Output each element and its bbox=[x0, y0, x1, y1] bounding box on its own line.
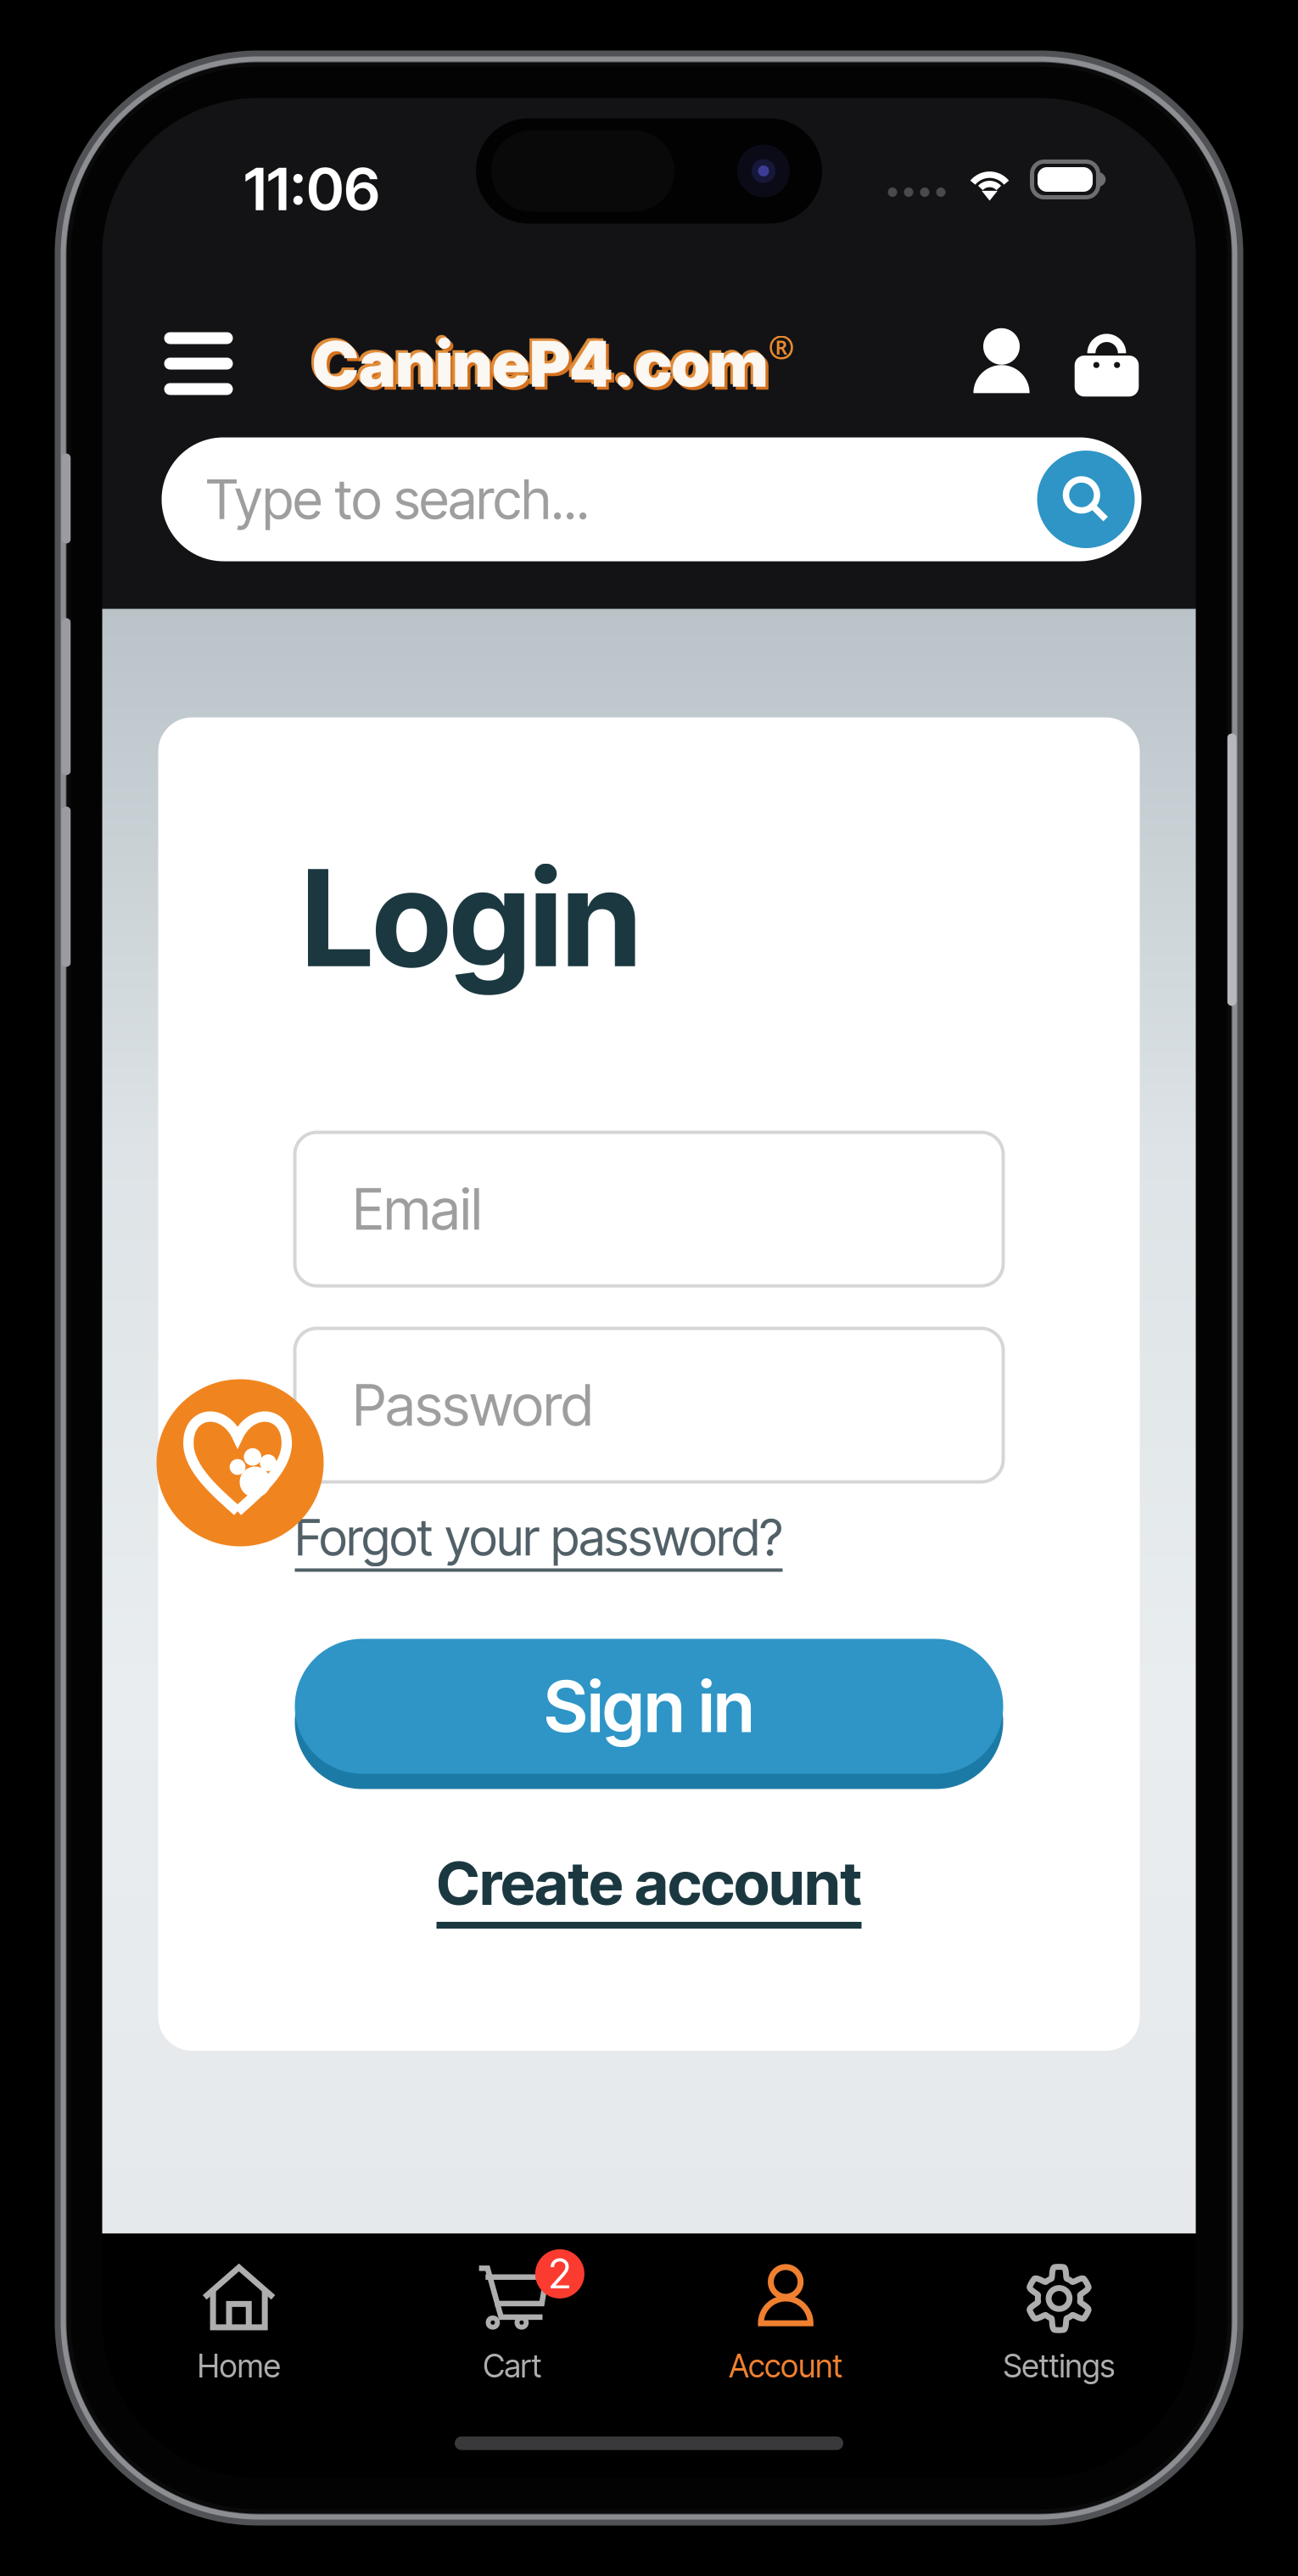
staticText: Home bbox=[197, 2347, 280, 2385]
staticText: Cart bbox=[483, 2347, 542, 2385]
staticText: Email bbox=[352, 1175, 482, 1243]
button[interactable]: Account bbox=[649, 2234, 922, 2385]
button[interactable]: Forgot your password? bbox=[295, 1507, 783, 1572]
staticText: CanineP4.com bbox=[309, 323, 766, 399]
button[interactable]: Sign in bbox=[295, 1631, 1003, 1781]
button[interactable]: 2 bbox=[376, 2234, 649, 2385]
staticText: Account bbox=[729, 2347, 843, 2385]
staticText: Forgot your password? bbox=[295, 1507, 783, 1568]
staticText: Create account bbox=[436, 1847, 862, 1919]
staticText: 2 bbox=[548, 2249, 571, 2299]
button[interactable]: Settings bbox=[922, 2234, 1196, 2385]
staticText: 11:06 bbox=[244, 153, 380, 224]
staticText: Password bbox=[352, 1371, 593, 1439]
staticText: Sign in bbox=[544, 1664, 754, 1749]
staticText: CanineP4.com bbox=[312, 325, 768, 402]
button[interactable]: CanineP4.com bbox=[312, 314, 794, 414]
button[interactable]: Create account bbox=[436, 1847, 862, 1929]
staticText: ® bbox=[768, 326, 794, 368]
button[interactable]: Menu bbox=[155, 314, 242, 414]
button[interactable]: Home bbox=[102, 2234, 376, 2385]
button[interactable]: Search bbox=[162, 437, 1141, 561]
button[interactable]: Shopping bag bbox=[1060, 314, 1153, 414]
staticText: Login bbox=[302, 837, 641, 998]
staticText: CanineP4.com bbox=[315, 328, 771, 405]
button[interactable]: Account bbox=[955, 314, 1048, 414]
staticText: Settings bbox=[1003, 2347, 1115, 2385]
staticText: Type to search... bbox=[206, 466, 589, 532]
